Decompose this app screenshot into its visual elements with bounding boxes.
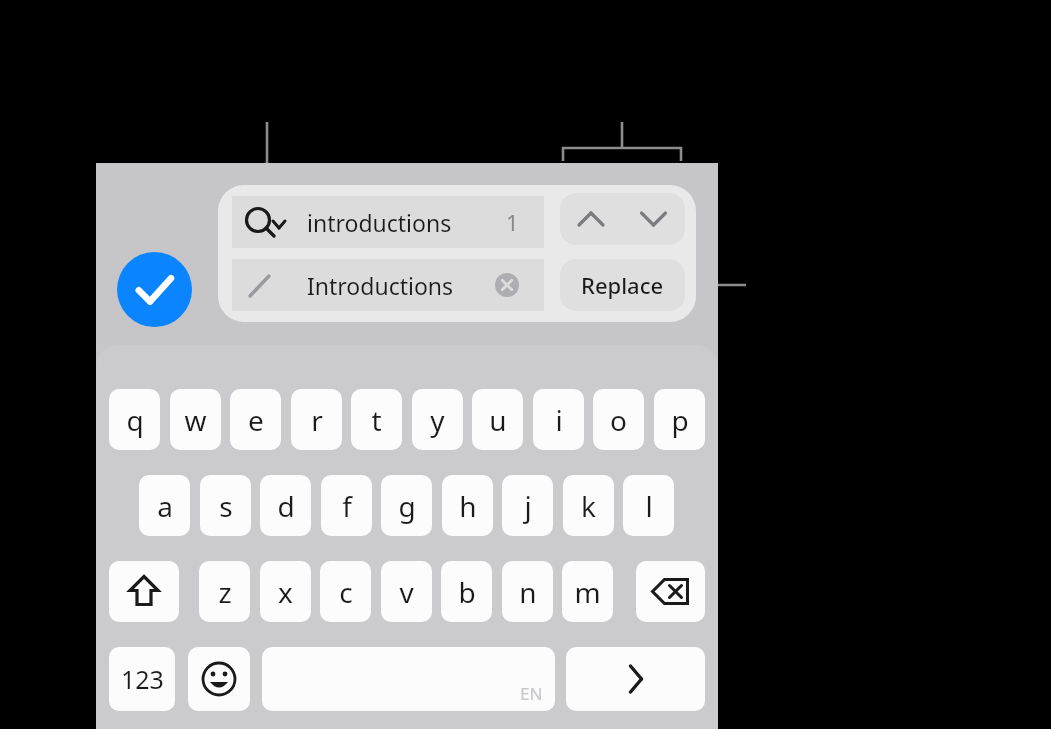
button[interactable]: Enter (566, 647, 705, 711)
staticText: z (218, 573, 232, 611)
staticText: c (339, 573, 353, 611)
staticText: l (645, 487, 653, 525)
button[interactable]: i (533, 389, 584, 450)
button[interactable]: 123 (109, 647, 175, 711)
staticText: w (184, 401, 207, 439)
staticText: s (219, 487, 233, 525)
button[interactable]: o (593, 389, 644, 450)
button[interactable]: c (320, 561, 371, 622)
button[interactable]: z (199, 561, 250, 622)
button[interactable]: p (654, 389, 705, 450)
staticText: u (489, 401, 507, 439)
staticText: t (371, 401, 382, 439)
button[interactable]: Next result (622, 193, 685, 245)
button[interactable]: m (562, 561, 613, 622)
staticText: v (399, 573, 414, 611)
staticText: k (581, 487, 596, 525)
staticText: d (277, 487, 295, 525)
button[interactable]: Replace (560, 259, 685, 311)
button[interactable]: t (351, 389, 402, 450)
button[interactable]: introductions (232, 196, 544, 248)
button[interactable]: Previous result (560, 193, 622, 245)
staticText: r (311, 401, 323, 439)
button[interactable]: h (442, 475, 493, 536)
staticText: Introductions (307, 270, 454, 301)
staticText: 1 (506, 207, 519, 237)
button[interactable]: Shift (109, 561, 179, 622)
button[interactable]: Done (117, 252, 192, 327)
button[interactable]: x (260, 561, 311, 622)
staticText: o (610, 401, 627, 439)
staticText: e (248, 401, 264, 439)
button[interactable]: k (563, 475, 614, 536)
staticText: n (519, 573, 537, 611)
staticText: i (555, 401, 563, 439)
button[interactable]: f (321, 475, 372, 536)
staticText: f (342, 487, 352, 525)
button[interactable]: y (412, 389, 463, 450)
button[interactable]: r (291, 389, 342, 450)
button[interactable]: b (441, 561, 492, 622)
button[interactable]: q (109, 389, 160, 450)
button[interactable]: Emoji (188, 647, 250, 711)
staticText: 123 (121, 662, 164, 696)
staticText: q (126, 401, 144, 439)
button[interactable]: l (623, 475, 674, 536)
button[interactable]: Backspace (636, 561, 705, 622)
staticText: g (398, 487, 416, 525)
staticText: h (459, 487, 477, 525)
button[interactable]: n (502, 561, 553, 622)
staticText: p (671, 401, 689, 439)
button[interactable]: e (230, 389, 281, 450)
button[interactable]: w (170, 389, 221, 450)
button[interactable]: u (472, 389, 523, 450)
staticText: a (157, 487, 173, 525)
button[interactable]: g (381, 475, 432, 536)
button[interactable]: Introductions (232, 259, 544, 311)
button[interactable]: s (200, 475, 251, 536)
staticText: b (458, 573, 476, 611)
button[interactable]: Space (262, 647, 555, 711)
staticText: x (278, 573, 293, 611)
button[interactable]: j (502, 475, 553, 536)
staticText: EN (520, 682, 543, 705)
button[interactable]: d (260, 475, 311, 536)
staticText: y (430, 401, 445, 439)
staticText: m (574, 573, 601, 611)
staticText: Replace (581, 270, 664, 300)
staticText: introductions (307, 207, 452, 238)
staticText: j (524, 487, 532, 525)
button[interactable]: a (139, 475, 190, 536)
button[interactable]: v (381, 561, 432, 622)
button[interactable]: Clear (492, 270, 522, 300)
